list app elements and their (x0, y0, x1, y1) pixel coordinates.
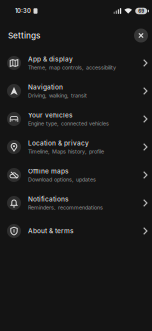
staticText: Offline maps (28, 167, 69, 175)
button[interactable]: Location & privacy (0, 133, 152, 161)
button[interactable]: App & display (0, 49, 152, 77)
staticText: 10:30 (15, 7, 31, 14)
button[interactable]: Offline maps (0, 161, 152, 189)
staticText: Settings (8, 30, 40, 40)
staticText: 69 (138, 8, 144, 14)
button[interactable]: Close (134, 28, 148, 42)
staticText: App & display (28, 55, 73, 63)
staticText: Location & privacy (28, 139, 89, 147)
staticText: Navigation (28, 83, 63, 91)
staticText: Theme, map controls, accessibility (28, 64, 116, 71)
button[interactable]: About & terms (0, 217, 152, 245)
staticText: Engine type, connected vehicles (28, 120, 109, 127)
staticText: Reminders, recommendations (28, 204, 103, 211)
staticText: Timeline, Maps history, profile (28, 148, 104, 155)
staticText: Driving, walking, transit (28, 92, 87, 99)
staticText: Download options, updates (28, 176, 96, 183)
button[interactable]: Your vehicles (0, 105, 152, 133)
staticText: Your vehicles (28, 111, 73, 119)
staticText: About & terms (28, 227, 74, 235)
button[interactable]: Navigation (0, 77, 152, 105)
staticText: Notifications (28, 195, 69, 203)
button[interactable]: Notifications (0, 189, 152, 217)
